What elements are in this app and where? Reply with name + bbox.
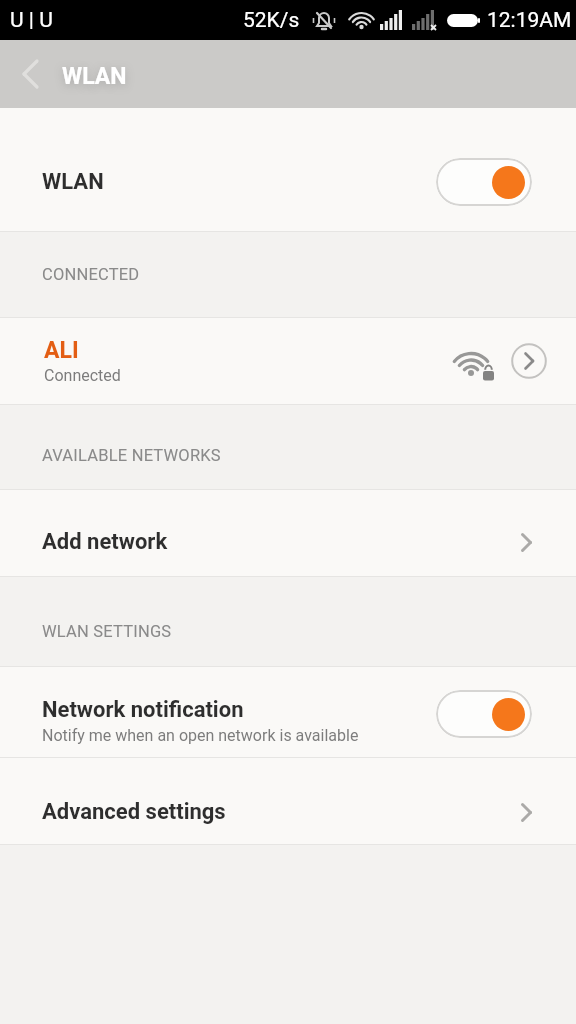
- button[interactable]: Advanced settings: [0, 758, 576, 844]
- staticText: WLAN: [62, 63, 127, 90]
- staticText: Add network: [42, 529, 168, 555]
- staticText: Connected: [44, 366, 121, 385]
- staticText: Notify me when an open network is availa…: [42, 726, 359, 745]
- staticText: WLAN SETTINGS: [42, 622, 172, 641]
- staticText: Network notification: [42, 697, 244, 723]
- button[interactable]: Add network: [0, 490, 576, 576]
- staticText: AVAILABLE NETWORKS: [42, 446, 221, 465]
- button[interactable]: [436, 158, 532, 206]
- staticText: U | U: [10, 8, 53, 33]
- staticText: CONNECTED: [42, 265, 140, 284]
- staticText: ALI: [44, 337, 79, 364]
- button[interactable]: WLAN: [0, 108, 576, 231]
- button[interactable]: ALI: [0, 318, 576, 404]
- button[interactable]: Network notification: [0, 667, 576, 757]
- staticText: 12:19AM: [487, 8, 572, 33]
- staticText: WLAN: [42, 169, 104, 195]
- button[interactable]: WLAN: [0, 40, 140, 108]
- staticText: 52K/s: [243, 8, 300, 33]
- staticText: Advanced settings: [42, 799, 226, 825]
- button[interactable]: [511, 343, 547, 379]
- button[interactable]: [436, 690, 532, 738]
